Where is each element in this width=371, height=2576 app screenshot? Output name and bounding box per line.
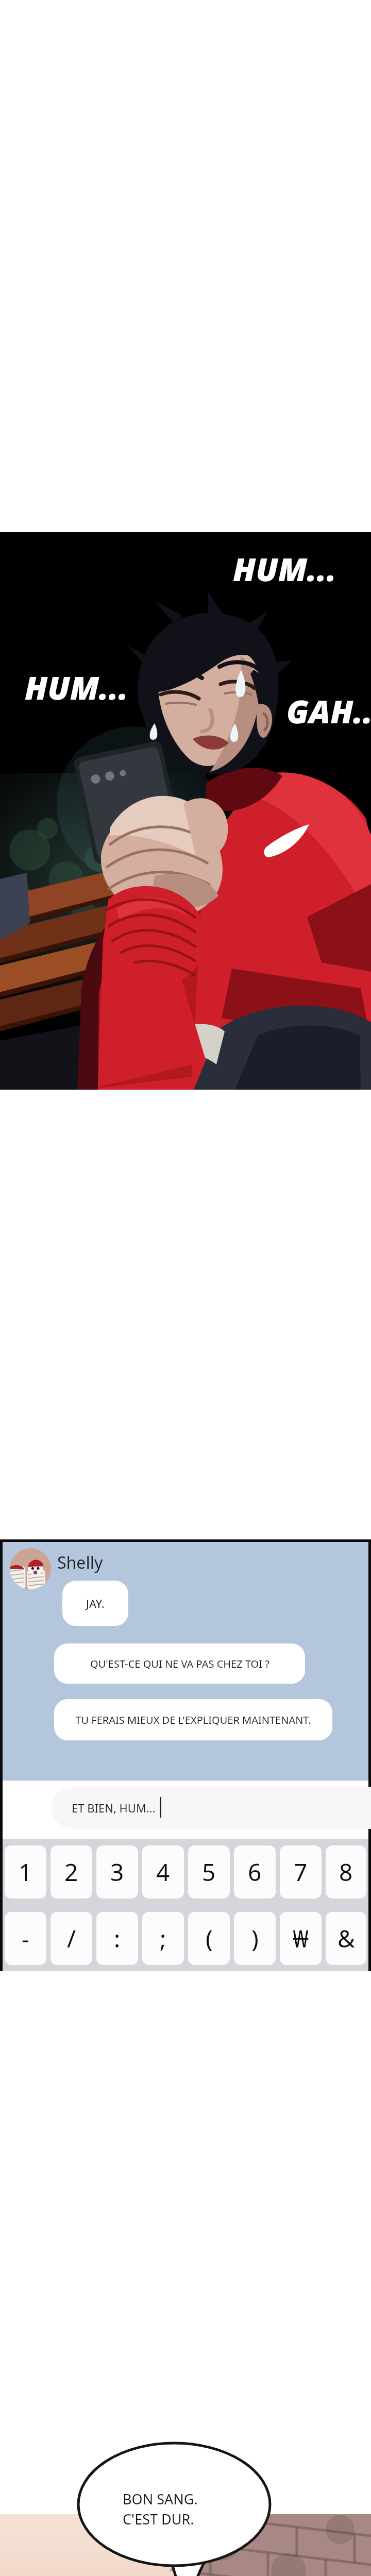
button[interactable]: 5 (188, 1845, 230, 1899)
button[interactable]: 4 (142, 1845, 184, 1899)
staticText: 2 (64, 1856, 78, 1888)
staticText: HUM... (25, 666, 129, 709)
staticText: 7 (294, 1856, 308, 1888)
button[interactable]: ₩ (280, 1912, 322, 1965)
staticText: ET BIEN, HUM... (72, 1800, 156, 1816)
button[interactable] (10, 1548, 51, 1589)
button[interactable]: JAY. (62, 1581, 128, 1626)
button[interactable]: - (5, 1912, 46, 1965)
staticText: 5 (202, 1856, 216, 1888)
staticText: JAY. (86, 1596, 105, 1611)
button[interactable]: 6 (234, 1845, 276, 1899)
staticText: : (114, 1922, 121, 1955)
staticText: ; (160, 1922, 166, 1955)
staticText: QU'EST-CE QUI NE VA PAS CHEZ TOI ? (90, 1657, 269, 1671)
button[interactable]: ) (234, 1912, 276, 1965)
staticText: 1 (19, 1856, 32, 1888)
button[interactable]: QU'EST-CE QUI NE VA PAS CHEZ TOI ? (54, 1643, 305, 1684)
staticText: ) (251, 1922, 259, 1955)
button[interactable]: TU FERAIS MIEUX DE L'EXPLIQUER MAINTENAN… (54, 1699, 332, 1740)
button[interactable] (52, 1787, 371, 1829)
staticText: ₩ (293, 1922, 309, 1955)
button[interactable]: ; (142, 1912, 184, 1965)
staticText: 4 (156, 1856, 170, 1888)
staticText: Shelly (57, 1551, 103, 1574)
button[interactable]: / (50, 1912, 92, 1965)
staticText: BON SANG. C'EST DUR. (123, 2489, 198, 2529)
button[interactable]: HUM... (0, 532, 371, 1090)
staticText: - (22, 1922, 29, 1955)
staticText: TU FERAIS MIEUX DE L'EXPLIQUER MAINTENAN… (75, 1713, 311, 1727)
staticText: 6 (248, 1856, 262, 1888)
staticText: / (67, 1922, 76, 1955)
staticText: 8 (339, 1856, 353, 1888)
staticText: HUM... (233, 547, 337, 590)
button[interactable]: SOUPIR (0, 2514, 371, 2576)
button[interactable]: 1 (5, 1845, 46, 1899)
button[interactable]: & (326, 1912, 366, 1965)
button[interactable]: ( (188, 1912, 230, 1965)
staticText: & (338, 1922, 355, 1955)
staticText: ( (206, 1922, 213, 1955)
button[interactable]: 2 (50, 1845, 92, 1899)
staticText: 3 (110, 1856, 124, 1888)
button[interactable]: 3 (96, 1845, 138, 1899)
staticText: GAH... (286, 689, 371, 733)
button[interactable]: : (96, 1912, 138, 1965)
button[interactable]: 7 (280, 1845, 322, 1899)
button[interactable]: 8 (326, 1845, 366, 1899)
